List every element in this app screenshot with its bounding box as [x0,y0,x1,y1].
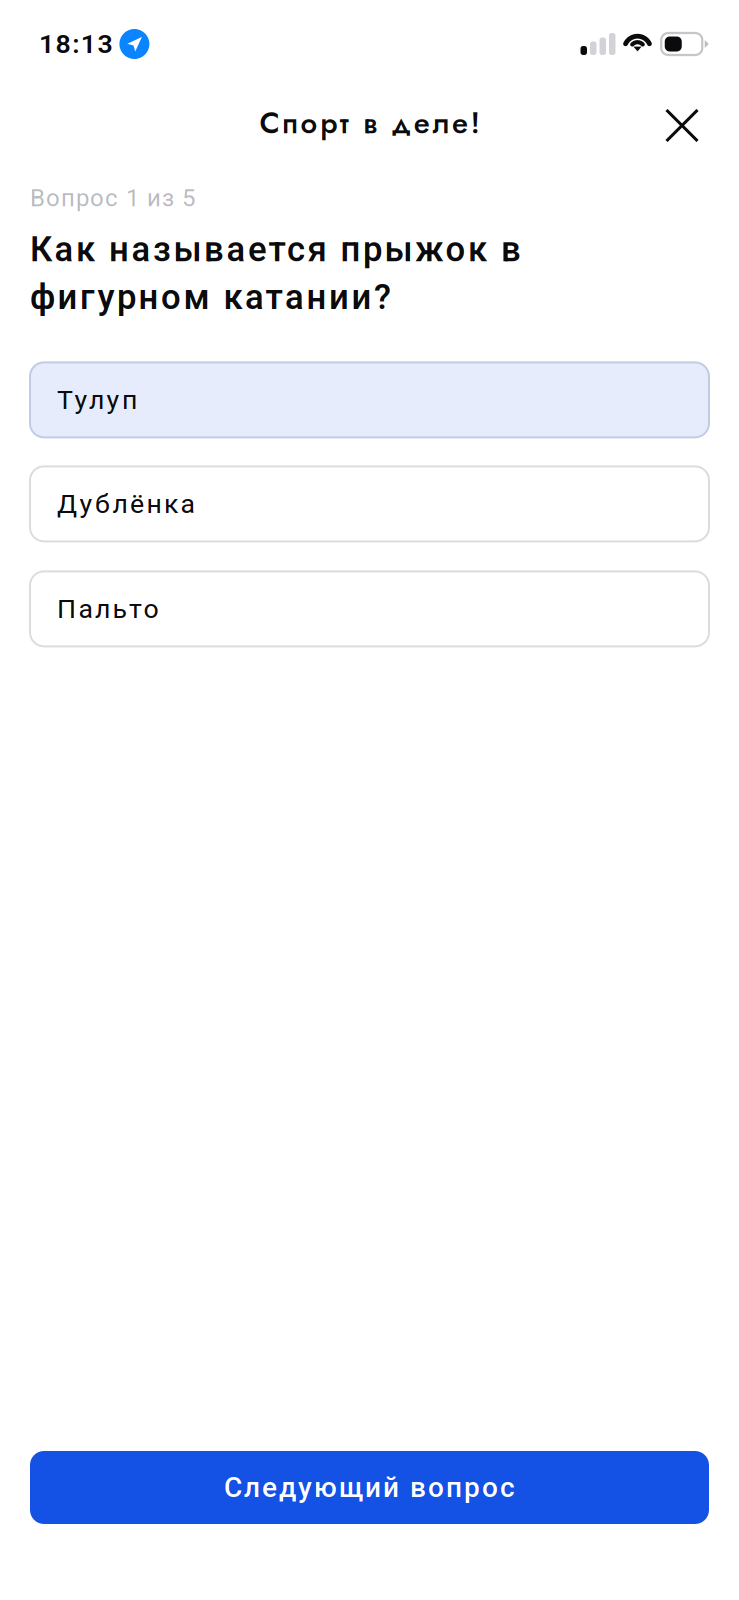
staticText: Спорт в деле! [259,102,480,144]
staticText: Вопрос 1 из 5 [30,184,195,212]
button[interactable]: Тулуп [30,362,709,437]
button[interactable]: Дублёнка [30,466,709,541]
staticText: Дублёнка [57,488,194,520]
staticText: Следующий вопрос [224,1471,515,1504]
staticText: 18:13 [39,28,112,60]
button[interactable]: Следующий вопрос [30,1451,709,1524]
staticText: Пальто [57,593,158,625]
button[interactable]: Закрыть [658,102,706,150]
button[interactable]: Пальто [30,571,709,646]
staticText: Как называется прыжок в фигурном катании… [30,229,521,317]
staticText: Тулуп [57,384,137,416]
